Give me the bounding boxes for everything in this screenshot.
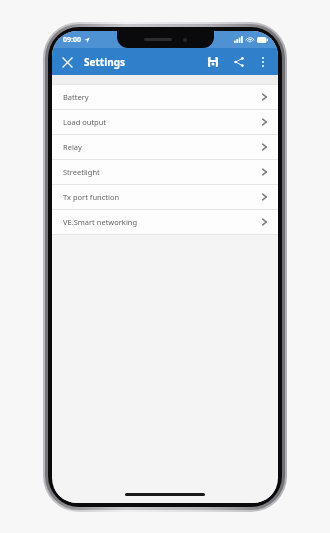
button[interactable]: Relay <box>52 135 278 159</box>
staticText: Relay <box>63 142 82 152</box>
staticText: VE.Smart networking <box>63 217 138 227</box>
staticText: Settings <box>84 55 125 69</box>
staticText: Load output <box>63 117 107 127</box>
button[interactable]: Load output <box>52 110 278 134</box>
staticText: Battery <box>63 92 89 102</box>
button[interactable]: Tx port function <box>52 185 278 209</box>
button[interactable]: Streetlight <box>52 160 278 184</box>
staticText: Tx port function <box>63 192 120 202</box>
button[interactable]: VE.Smart networking <box>52 210 278 234</box>
button[interactable]: Battery <box>52 85 278 109</box>
staticText: 09:00 <box>63 35 81 45</box>
button[interactable]: Save <box>201 50 225 74</box>
button[interactable]: More options <box>252 51 274 73</box>
button[interactable]: Close <box>56 51 78 73</box>
button[interactable]: Share <box>227 50 251 74</box>
staticText: Streetlight <box>63 167 100 177</box>
